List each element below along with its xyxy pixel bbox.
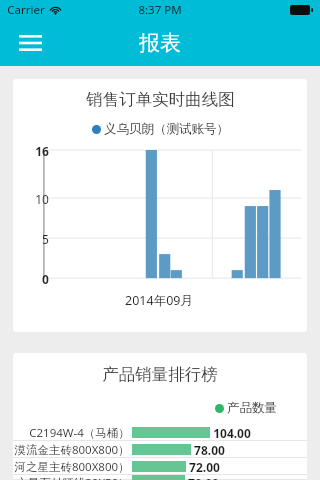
staticText: 72.00 bbox=[189, 459, 220, 475]
staticText: 104.00 bbox=[213, 425, 251, 441]
button[interactable]: 产品销量排行榜 bbox=[13, 353, 307, 480]
staticText: 5 bbox=[42, 231, 49, 247]
staticText: 8:37 PM bbox=[138, 2, 182, 18]
button[interactable]: C2194W-4（马桶） bbox=[13, 424, 307, 441]
staticText: 10 bbox=[35, 191, 49, 207]
staticText: 之星石材腰线30X50） bbox=[16, 475, 130, 480]
button[interactable]: Open navigation menu bbox=[8, 21, 52, 65]
staticText: 河之星主砖800X800） bbox=[14, 459, 130, 475]
staticText: 16 bbox=[35, 143, 49, 159]
staticText: 产品销量排行榜 bbox=[102, 364, 218, 385]
staticText: 产品数量 bbox=[227, 400, 277, 416]
staticText: 报表 bbox=[139, 30, 181, 56]
button[interactable]: 销售订单实时曲线图 bbox=[13, 79, 307, 332]
button[interactable]: 河之星主砖800X800） bbox=[13, 458, 307, 475]
staticText: Carrier bbox=[7, 2, 45, 18]
staticText: 78.00 bbox=[194, 442, 225, 458]
staticText: 义乌贝朗（测试账号） bbox=[104, 121, 229, 137]
staticText: C2194W-4（马桶） bbox=[29, 425, 130, 441]
staticText: 销售订单实时曲线图 bbox=[86, 89, 235, 110]
button[interactable]: 漠流金主砖800X800） bbox=[13, 441, 307, 458]
staticText: 漠流金主砖800X800） bbox=[14, 442, 130, 458]
staticText: 2014年09月 bbox=[125, 292, 193, 309]
button[interactable]: 之星石材腰线30X50） bbox=[13, 475, 307, 480]
staticText: 70.00 bbox=[188, 475, 219, 480]
staticText: 0 bbox=[42, 271, 49, 287]
